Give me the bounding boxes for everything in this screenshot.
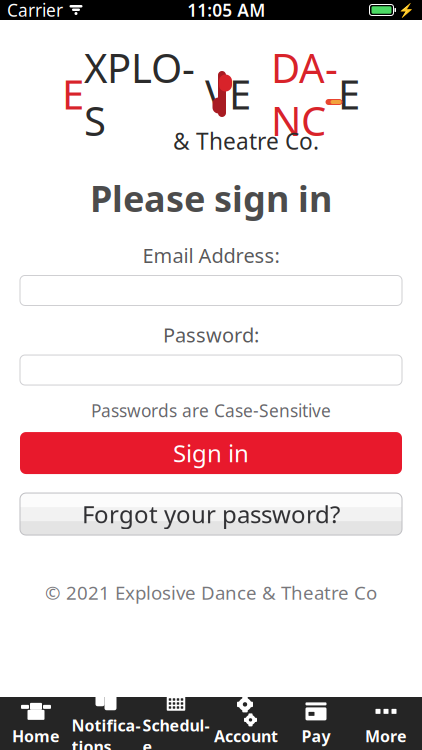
staticText: Forgot your password? <box>82 498 340 530</box>
staticText: DANC <box>271 41 338 147</box>
button[interactable]: Schedule <box>141 697 211 750</box>
staticText: ⚡ <box>398 2 415 18</box>
staticText: Account <box>214 725 278 747</box>
staticText: & Theatre Co. <box>173 126 319 156</box>
staticText: Email Address: <box>142 242 279 268</box>
staticText: Schedule <box>142 715 209 750</box>
staticText: E <box>62 67 84 120</box>
staticText: Passwords are Case-Sensitive <box>91 399 331 422</box>
button[interactable]: Account <box>211 697 281 750</box>
staticText: Carrier <box>7 0 63 21</box>
staticText: Sign in <box>173 437 249 469</box>
button[interactable]: Notifications <box>71 697 141 750</box>
staticText: E <box>338 67 360 120</box>
staticText: Please sign in <box>90 174 332 222</box>
button[interactable]: Home <box>1 697 71 750</box>
staticText: More <box>365 725 407 747</box>
staticText: VE <box>205 67 251 120</box>
button[interactable]: Pay <box>281 697 351 750</box>
button[interactable]: More <box>351 697 421 750</box>
staticText: Home <box>12 725 60 747</box>
staticText: 11:05 AM <box>187 0 265 21</box>
staticText: Pay <box>301 725 330 747</box>
staticText: Notifications <box>71 715 140 750</box>
staticText: © 2021 Explosive Dance & Theatre Co <box>45 580 377 605</box>
button[interactable]: Forgot your password? <box>20 493 402 535</box>
button[interactable]: Sign in <box>20 432 402 474</box>
staticText: XPLOS <box>84 41 195 147</box>
staticText: Password: <box>163 321 259 348</box>
